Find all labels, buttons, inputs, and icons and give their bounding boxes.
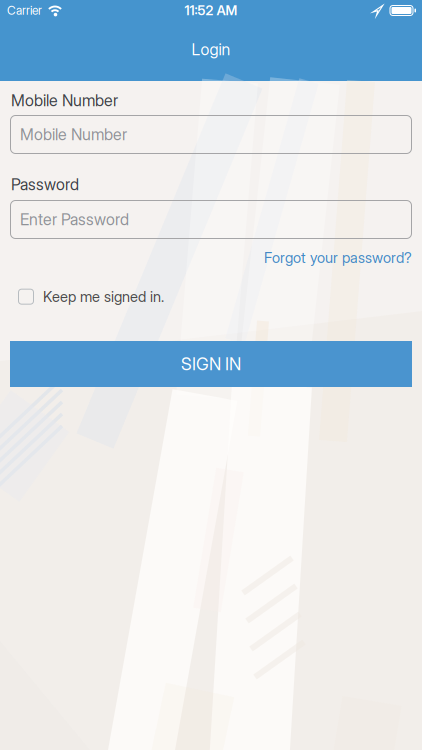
- staticText: Login: [191, 40, 230, 59]
- staticText: Carrier: [7, 3, 42, 18]
- staticText: Password: [11, 175, 79, 194]
- staticText: Enter Password: [20, 210, 129, 229]
- button[interactable]: Enter Password: [10, 200, 412, 239]
- staticText: Keep me signed in.: [43, 288, 164, 305]
- button[interactable]: SIGN IN: [10, 341, 412, 387]
- button[interactable]: Keep me signed in.: [18, 288, 164, 305]
- staticText: 11:52 AM: [184, 3, 237, 18]
- button[interactable]: Mobile Number: [10, 115, 412, 154]
- staticText: Mobile Number: [11, 91, 118, 110]
- staticText: Forgot your password?: [264, 249, 412, 266]
- staticText: Mobile Number: [20, 125, 127, 144]
- button[interactable]: Forgot your password?: [264, 249, 412, 266]
- staticText: SIGN IN: [181, 354, 241, 374]
